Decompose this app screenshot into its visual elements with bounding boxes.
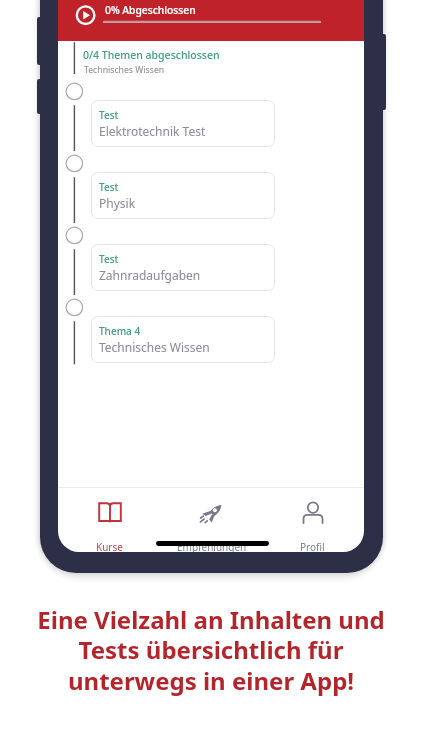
staticText: Test [99,180,119,194]
staticText: Zahnradaufgaben [99,267,201,283]
staticText: Test [99,108,119,122]
button[interactable]: Test [91,100,275,147]
button[interactable]: Profil [262,488,363,552]
button[interactable]: Kurse [59,488,160,552]
staticText: Technisches Wissen [84,64,165,76]
button[interactable]: Test [91,244,275,291]
staticText: 0% Abgeschlossen [105,3,196,17]
staticText: Thema 4 [99,324,141,338]
other: Empfehlungen [200,502,224,524]
button[interactable]: Empfehlungen [161,488,262,552]
button[interactable]: Thema 4 [91,316,275,363]
staticText: Profil [300,540,325,552]
staticText: Kurse [96,540,123,552]
staticText: Elektrotechnik Test [99,123,206,139]
staticText: Test [99,252,119,266]
other: Profil [301,502,325,524]
other: Kurse [98,502,122,524]
staticText: Empfehlungen [177,540,247,552]
staticText: Technisches Wissen [99,339,210,355]
staticText: Physik [99,195,136,211]
staticText: Eine Vielzahl an Inhalten und Tests über… [37,603,385,697]
staticText: 0/4 Themen abgeschlossen [83,48,220,62]
button[interactable]: Test [91,172,275,219]
